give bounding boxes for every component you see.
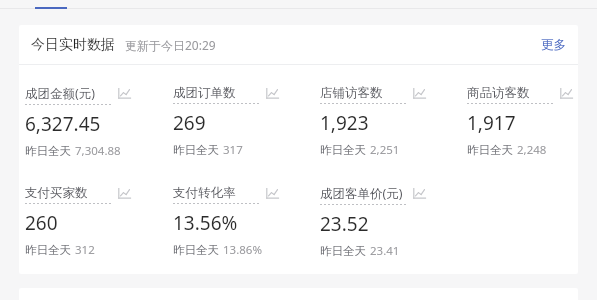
staticText: 店铺访客数 [320,85,383,101]
button[interactable]: 成团客单价(元) [320,185,467,259]
staticText: 2,251 [370,142,400,158]
staticText: 1,923 [320,110,369,136]
staticText: 260 [25,210,58,236]
button[interactable]: 店铺访客数 [320,85,467,158]
button[interactable]: 成团金额(元) [25,85,173,159]
staticText: 昨日全天 [173,243,219,257]
staticText: 23.41 [370,243,400,259]
staticText: 317 [223,142,243,158]
staticText: 23.52 [320,211,369,237]
button[interactable]: 成团订单数 [173,85,320,158]
staticText: 1,917 [467,110,516,136]
staticText: 13.86% [223,242,262,258]
staticText: 昨日全天 [173,143,219,157]
staticText: 2,248 [517,142,547,158]
staticText: 更新于今日20:29 [125,37,216,53]
staticText: 昨日全天 [467,143,513,157]
staticText: 支付转化率 [173,185,236,201]
staticText: 支付买家数 [25,185,88,201]
staticText: 昨日全天 [25,144,71,158]
staticText: 成团订单数 [173,85,236,101]
button[interactable]: 商品访客数 [467,85,577,158]
staticText: 昨日全天 [320,143,366,157]
staticText: 269 [173,110,206,136]
staticText: 6,327.45 [25,111,101,137]
staticText: 312 [75,242,95,258]
staticText: 成团客单价(元) [320,185,403,202]
staticText: 成团金额(元) [25,85,96,102]
staticText: 昨日全天 [25,243,71,257]
button[interactable]: 支付转化率 [173,185,320,258]
staticText: 13.56% [173,210,238,236]
button[interactable]: 更多 [539,33,568,57]
staticText: 更多 [541,37,566,53]
staticText: 今日实时数据 [31,36,115,54]
staticText: 商品访客数 [467,85,530,101]
button[interactable]: 支付买家数 [25,185,173,258]
staticText: 昨日全天 [320,244,366,258]
staticText: 7,304.88 [75,143,121,159]
